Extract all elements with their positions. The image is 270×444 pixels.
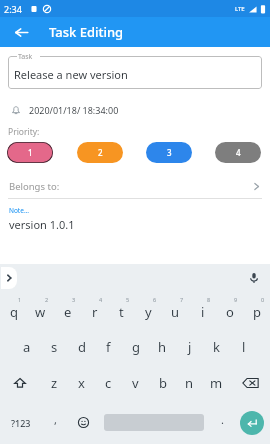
staticText: y xyxy=(145,303,152,321)
staticText: s xyxy=(51,338,58,356)
button[interactable]: c xyxy=(95,365,122,401)
button[interactable]: 4 xyxy=(81,291,108,329)
button[interactable]: h xyxy=(149,329,176,365)
staticText: 7 xyxy=(180,296,184,303)
button[interactable]: , xyxy=(42,401,68,444)
staticText: d xyxy=(78,338,86,356)
button[interactable]: 2 xyxy=(27,291,54,329)
button[interactable]: 1 xyxy=(7,142,53,163)
staticText: g xyxy=(132,338,140,356)
button[interactable]: 0 xyxy=(243,291,270,329)
staticText: l xyxy=(242,338,246,356)
button[interactable]: . xyxy=(210,401,234,444)
button[interactable]: Voice input xyxy=(245,269,263,287)
button[interactable]: d xyxy=(68,329,95,365)
button[interactable]: 9 xyxy=(216,291,243,329)
button[interactable]: Belongs to: xyxy=(0,174,270,198)
button[interactable]: 1 xyxy=(0,291,27,329)
staticText: p xyxy=(253,303,261,321)
staticText: . xyxy=(221,412,224,427)
staticText: h xyxy=(158,338,167,356)
staticText: k xyxy=(213,338,220,356)
staticText: 5 xyxy=(126,296,130,303)
staticText: Priority: xyxy=(8,126,40,138)
button[interactable]: 3 xyxy=(54,291,81,329)
staticText: c xyxy=(105,374,112,392)
button[interactable]: 4 xyxy=(215,142,261,163)
staticText: 2 xyxy=(45,296,49,303)
button[interactable]: 6 xyxy=(135,291,162,329)
staticText: 6 xyxy=(153,296,157,303)
staticText: 2020/01/18/ 18:34:00 xyxy=(29,104,119,116)
button[interactable]: j xyxy=(176,329,203,365)
button[interactable]: 2020/01/18/ 18:34:00 xyxy=(0,99,270,121)
staticText: f xyxy=(106,338,111,356)
button[interactable]: n xyxy=(176,365,203,401)
button[interactable]: z xyxy=(40,365,68,401)
staticText: , xyxy=(54,412,57,427)
button[interactable]: m xyxy=(203,365,230,401)
staticText: 3 xyxy=(167,147,172,158)
staticText: Note... xyxy=(9,206,30,215)
button[interactable]: 3 xyxy=(146,142,192,163)
staticText: Belongs to: xyxy=(9,180,60,193)
staticText: 1 xyxy=(18,296,22,303)
button[interactable]: Enter xyxy=(234,401,270,444)
button[interactable]: ?123 xyxy=(0,401,42,444)
staticText: ?123 xyxy=(11,417,31,429)
staticText: a xyxy=(23,338,31,356)
staticText: b xyxy=(159,374,167,392)
button[interactable]: v xyxy=(122,365,149,401)
staticText: m xyxy=(210,374,223,392)
button[interactable]: 5 xyxy=(108,291,135,329)
button[interactable]: b xyxy=(149,365,176,401)
staticText: 2 xyxy=(98,147,103,158)
staticText: t xyxy=(119,303,124,321)
button[interactable]: 8 xyxy=(189,291,216,329)
button[interactable]: Release a new version xyxy=(8,56,262,89)
staticText: 8 xyxy=(207,296,211,303)
staticText: z xyxy=(51,374,58,392)
staticText: 3 xyxy=(72,296,76,303)
button[interactable]: l xyxy=(230,329,257,365)
staticText: r xyxy=(92,303,98,321)
staticText: u xyxy=(171,303,180,321)
staticText: x xyxy=(78,374,85,392)
button[interactable]: Shift xyxy=(0,365,40,401)
staticText: 2:34 xyxy=(4,3,22,15)
button[interactable]: Backspace xyxy=(230,365,270,401)
button[interactable]: f xyxy=(95,329,122,365)
staticText: 9 xyxy=(234,296,238,303)
staticText: i xyxy=(201,303,205,321)
staticText: 4 xyxy=(236,147,241,158)
staticText: 0 xyxy=(261,296,265,303)
staticText: Task Editing xyxy=(49,23,124,41)
button[interactable]: version 1.0.1 xyxy=(9,217,75,232)
staticText: w xyxy=(35,303,46,321)
staticText: Release a new version xyxy=(14,67,128,82)
staticText: 4 xyxy=(99,296,103,303)
button[interactable]: g xyxy=(122,329,149,365)
staticText: n xyxy=(185,374,194,392)
staticText: v xyxy=(132,374,139,392)
button[interactable]: 7 xyxy=(162,291,189,329)
button[interactable]: a xyxy=(13,329,41,365)
staticText: j xyxy=(188,338,192,356)
staticText: q xyxy=(10,303,18,321)
staticText: e xyxy=(64,303,72,321)
staticText: 1 xyxy=(28,147,33,158)
button[interactable]: Emoji xyxy=(68,401,98,444)
staticText: LTE xyxy=(235,5,245,13)
button[interactable]: k xyxy=(203,329,230,365)
button[interactable]: Expand suggestions xyxy=(1,267,17,289)
staticText: o xyxy=(226,303,234,321)
button[interactable]: x xyxy=(68,365,95,401)
button[interactable]: 2 xyxy=(77,142,123,163)
button[interactable]: Back xyxy=(8,19,34,45)
staticText: Task xyxy=(18,52,33,62)
button[interactable]: s xyxy=(41,329,68,365)
